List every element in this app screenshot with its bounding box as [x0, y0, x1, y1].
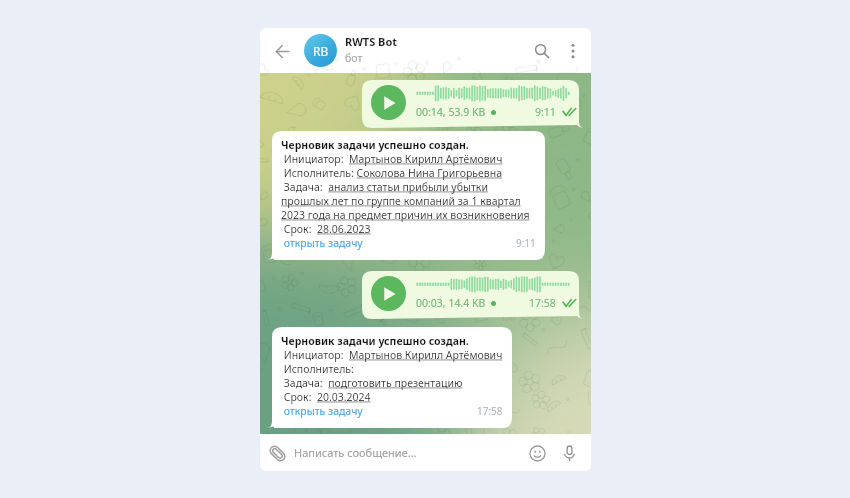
- staticText: Срок: 20.03.2024: [281, 390, 371, 404]
- button[interactable]: Emoji: [521, 437, 553, 469]
- staticText: Черновик задачи успешно создан.: [281, 138, 469, 152]
- staticText: Черновик задачи успешно создан.: [281, 334, 469, 348]
- button[interactable]: Черновик задачи успешно создан.: [267, 327, 512, 428]
- button[interactable]: 00:14, 53.9 KB: [362, 80, 584, 128]
- staticText: Исполнитель: Соколова Нина Григорьевна: [281, 166, 503, 180]
- button[interactable]: Attach file: [260, 436, 294, 470]
- button[interactable]: 00:03, 14.4 KB: [362, 271, 584, 319]
- staticText: Задача: анализ статьи прибыли убытки про…: [281, 180, 536, 222]
- button[interactable]: Back: [260, 29, 304, 73]
- staticText: RB: [313, 43, 329, 59]
- staticText: RWTS Bot: [345, 34, 398, 49]
- staticText: 00:03, 14.4 KB: [416, 296, 486, 310]
- staticText: 00:14, 53.9 KB: [416, 105, 486, 119]
- staticText: 17:58: [529, 296, 556, 310]
- staticText: Написать сообщение...: [294, 445, 417, 460]
- staticText: Исполнитель:: [281, 362, 357, 376]
- button[interactable]: Черновик задачи успешно создан.: [267, 131, 545, 260]
- staticText: открыть задачу: [281, 404, 363, 418]
- staticText: бот: [345, 51, 363, 65]
- staticText: Срок: 28.06.2023: [281, 222, 371, 236]
- staticText: Инициатор: Мартынов Кирилл Артёмович: [281, 348, 503, 362]
- staticText: 9:11: [516, 236, 536, 250]
- staticText: 9:11: [535, 105, 556, 119]
- staticText: Инициатор: Мартынов Кирилл Артёмович: [281, 152, 503, 166]
- staticText: открыть задачу: [281, 236, 363, 250]
- staticText: Задача: подготовить презентацию: [281, 376, 463, 390]
- button[interactable]: Search: [525, 34, 559, 68]
- staticText: 17:58: [477, 404, 503, 418]
- button[interactable]: Record voice message: [553, 437, 585, 469]
- button[interactable]: More options: [559, 37, 587, 65]
